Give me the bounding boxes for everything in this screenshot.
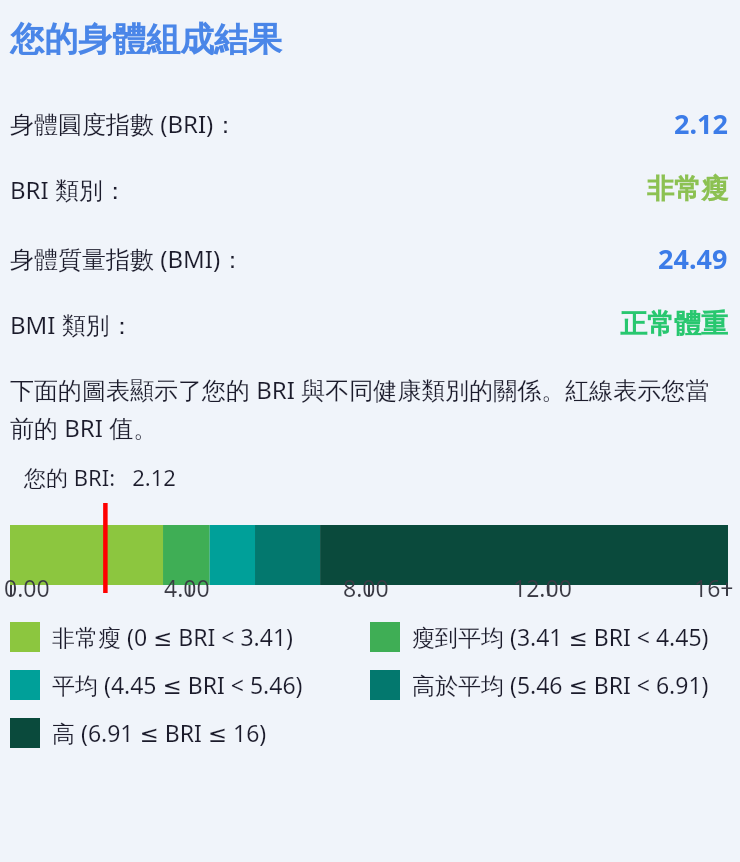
staticText: 12.00 bbox=[513, 572, 572, 603]
button[interactable]: 高於平均 (5.46 ≤ BRI < 6.91) bbox=[370, 669, 740, 700]
button[interactable]: 平均 (4.45 ≤ BRI < 5.46) bbox=[0, 669, 370, 700]
staticText: 您的身體組成結果 bbox=[10, 18, 282, 61]
staticText: 高於平均 (5.46 ≤ BRI < 6.91) bbox=[412, 669, 709, 700]
staticText: 24.49 bbox=[658, 240, 728, 277]
button[interactable]: BMI 類別： bbox=[0, 307, 740, 341]
button[interactable]: 高 (6.91 ≤ BRI ≤ 16) bbox=[0, 717, 370, 748]
staticText: 高 (6.91 ≤ BRI ≤ 16) bbox=[52, 717, 267, 748]
staticText: 2.12 bbox=[674, 105, 728, 142]
staticText: 您的 BRI: 2.12 bbox=[24, 462, 176, 492]
staticText: 非常瘦 bbox=[647, 172, 728, 206]
staticText: 正常體重 bbox=[620, 307, 728, 341]
button[interactable]: 非常瘦 (0 ≤ BRI < 3.41) bbox=[0, 621, 370, 652]
staticText: 16+ bbox=[694, 572, 734, 603]
staticText: BMI 類別： bbox=[10, 308, 134, 341]
button[interactable]: 身體圓度指數 (BRI)： bbox=[0, 105, 740, 142]
button[interactable]: 身體質量指數 (BMI)： bbox=[0, 240, 740, 277]
staticText: 身體質量指數 (BMI)： bbox=[10, 242, 245, 275]
staticText: 0.00 bbox=[4, 572, 50, 603]
staticText: 非常瘦 (0 ≤ BRI < 3.41) bbox=[52, 621, 293, 652]
staticText: 8.00 bbox=[343, 572, 389, 603]
staticText: 下面的圖表顯示了您的 BRI 與不同健康類別的關係。紅線表示您當前的 BRI 值… bbox=[10, 373, 728, 444]
button[interactable]: 瘦到平均 (3.41 ≤ BRI < 4.45) bbox=[370, 621, 740, 652]
button[interactable]: BRI 類別： bbox=[0, 172, 740, 206]
staticText: 4.00 bbox=[164, 572, 210, 603]
staticText: 平均 (4.45 ≤ BRI < 5.46) bbox=[52, 669, 303, 700]
staticText: 身體圓度指數 (BRI)： bbox=[10, 107, 238, 140]
staticText: BRI 類別： bbox=[10, 173, 127, 206]
staticText: 瘦到平均 (3.41 ≤ BRI < 4.45) bbox=[412, 621, 709, 652]
